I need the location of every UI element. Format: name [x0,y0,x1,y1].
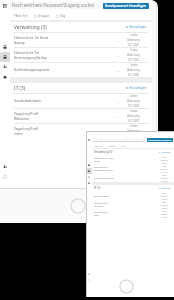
staticText: Nach welchem Passwort/Zugang suchst du? [12,2,100,9]
button[interactable]: Elektronische Tür Home [94,155,172,164]
staticText: ... [154,203,156,206]
button[interactable]: Hinzufügen [125,24,148,30]
staticText: Filter Set [14,14,28,18]
button[interactable]: Knackpasswort hinzufügen [147,138,173,142]
staticText: Elektronische Tür Home [94,157,114,159]
button[interactable]: Hinzufügen [125,85,148,91]
button[interactable]: Settings [0,72,10,82]
staticText: 10.7.2021 [161,216,168,218]
staticText: Letzte [130,48,138,52]
button[interactable]: Paypal.org/Profil [94,209,172,218]
staticText: Gruppe [38,14,50,18]
button[interactable]: Buchhaltungsprogramm [14,63,148,77]
button[interactable]: Paypal.org/Profil [14,124,148,138]
staticText: Letzte [162,201,167,203]
button[interactable]: Gruppe [33,13,51,19]
staticText: Buchhaltungsprogramm [94,177,115,179]
staticText: Filter Set [95,145,103,147]
staticText: Paypal.org/Profil [94,211,108,213]
staticText: Letzte [162,210,167,212]
button[interactable]: Nach welchem Passwort/Zugang suchst du? [10,2,100,9]
staticText: Nach welchem Passwort/Zugang suchst du? [93,139,145,142]
staticText: Änderung [127,99,140,103]
staticText: IT (3) [14,85,26,92]
button[interactable]: More options [169,167,172,170]
staticText: Verwaltung (3) [94,150,113,154]
button[interactable]: More options [169,176,172,179]
staticText: Elektronische Tür [14,51,40,55]
button[interactable]: Filter Set [13,13,29,19]
staticText: Änderung [160,195,168,197]
staticText: Verwaltung (3) [14,24,47,31]
button[interactable]: Paypal.org/Profil [94,200,172,209]
button[interactable]: Buchhaltungsprogramm [94,173,172,182]
staticText: Änderung [127,38,140,42]
staticText: Kundendatenbank [94,195,110,197]
button[interactable]: Hinzufügen [158,186,172,190]
staticText: ... [154,176,156,179]
button[interactable]: More options [143,129,148,134]
button[interactable]: Gruppe [106,144,117,148]
button[interactable]: Profile [0,172,10,182]
staticText: Knackpasswort hinzufügen [105,4,147,8]
staticText: 10.7.2021 [127,73,140,77]
button[interactable]: Team [0,62,10,72]
staticText: 10.7.2021 [161,180,168,182]
staticText: Änderung [127,129,140,133]
button[interactable]: Apps menu [0,0,10,11]
staticText: ... [154,158,156,161]
button[interactable]: Elektronische Tür [14,48,148,62]
button[interactable]: Knackpasswort hinzufügen [103,3,149,9]
button[interactable]: Nach welchem Passwort/Zugang suchst du? [92,138,146,142]
button[interactable]: Apps menu [86,136,92,143]
button[interactable]: More options [169,194,172,197]
staticText: 10.7.2021 [127,43,140,47]
staticText: Änderung [160,204,168,206]
staticText: Änderung [127,68,140,72]
staticText: intern [94,214,99,216]
staticText: Elektronische Tür [94,166,109,168]
button[interactable]: Kundendatenbank [94,191,172,200]
staticText: Gruppe [109,145,116,147]
staticText: Elektronische Tür Home [14,36,49,40]
button[interactable]: Kundendatenbank [14,94,148,108]
staticText: 10.7.2021 [161,162,168,164]
button[interactable]: Tag [119,144,126,148]
staticText: Änderung [127,53,140,57]
button[interactable]: Safe [86,168,92,174]
staticText: Webserver [94,205,103,207]
button[interactable]: Team [86,174,92,180]
button[interactable]: Safe [0,52,10,62]
button[interactable]: Elektronische Tür Home [14,33,148,47]
button[interactable]: Filter Set [94,144,104,148]
staticText: ... [116,53,119,58]
button[interactable]: Tag [55,13,67,19]
button[interactable]: Elektronische Tür [94,164,172,173]
staticText: ... [116,38,119,43]
button[interactable]: More options [169,212,172,215]
button[interactable]: Profile [86,277,92,283]
button[interactable]: Hinzufügen [158,150,172,154]
staticText: Hinterausgang Backup [94,169,113,171]
button[interactable]: Share [86,271,92,277]
staticText: Änderung [127,114,140,118]
button[interactable]: Passwords [86,162,92,168]
button[interactable]: Share [0,162,10,172]
staticText: Paypal.org/Profil [94,202,108,204]
staticText: Änderung [160,213,168,215]
staticText: ... [116,68,119,73]
button[interactable]: Paypal.org/Profil [14,109,148,123]
button[interactable]: More options [169,158,172,161]
button[interactable]: Passwords [0,42,10,52]
button[interactable]: Settings [86,180,92,186]
staticText: Kundendatenbank [14,99,41,103]
button[interactable]: More options [169,203,172,206]
staticText: Hinzufügen [129,86,147,90]
staticText: 10.7.2021 [127,119,140,123]
